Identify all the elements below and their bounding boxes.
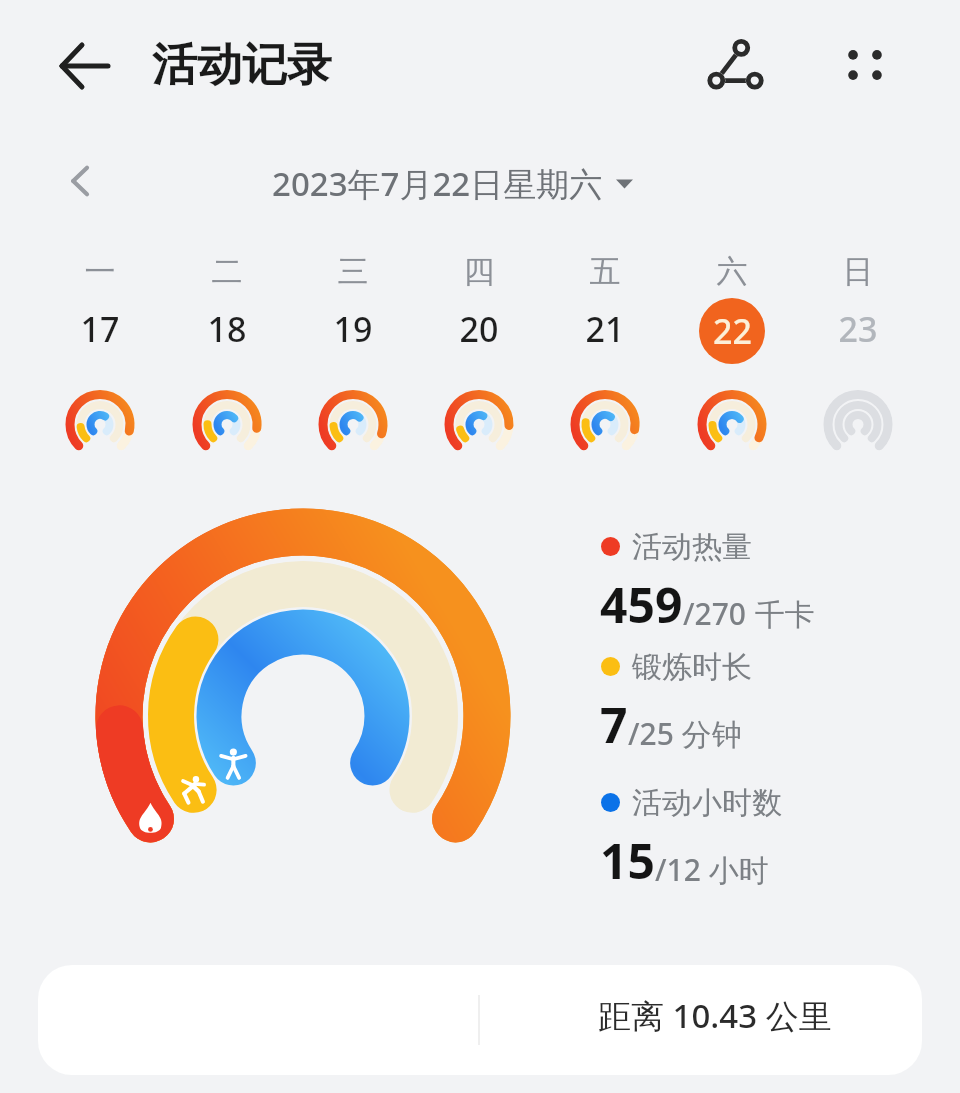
button[interactable]: 二 [167, 244, 287, 444]
staticText: 活动记录 [152, 37, 332, 94]
staticText: 小时 [701, 849, 769, 890]
button[interactable]: 日 [798, 244, 918, 444]
staticText: 五 [545, 252, 665, 291]
staticText: 2023年7月22日星期六 [272, 161, 603, 206]
staticText: 分钟 [674, 713, 742, 754]
button[interactable]: Share [696, 26, 774, 104]
staticText: 22 [713, 308, 752, 354]
button[interactable]: 2023年7月22日星期六 [272, 158, 633, 208]
staticText: /25 [628, 713, 674, 754]
staticText: /270 [683, 593, 747, 634]
staticText: 六 [672, 252, 792, 291]
staticText: 锻炼时长 [632, 648, 752, 686]
staticText: 千卡 [747, 593, 815, 634]
staticText: 三 [293, 252, 413, 291]
button[interactable]: 一 [40, 244, 160, 444]
staticText: /12 [655, 849, 701, 890]
staticText: 活动热量 [632, 528, 752, 566]
button[interactable]: 五 [545, 244, 665, 444]
staticText: 一 [40, 252, 160, 291]
button[interactable]: More options [826, 26, 904, 104]
staticText: 23 [798, 306, 918, 352]
button[interactable]: 四 [419, 244, 539, 444]
staticText: 17 [40, 306, 160, 352]
staticText: 18 [167, 306, 287, 352]
staticText: 15 [600, 828, 655, 893]
staticText: 459 [600, 572, 683, 637]
staticText: 四 [419, 252, 539, 291]
staticText: 20 [419, 306, 539, 352]
staticText: 7 [600, 692, 628, 757]
button[interactable]: 三 [293, 244, 413, 444]
staticText: 19 [293, 306, 413, 352]
staticText: 日 [798, 252, 918, 291]
staticText: 二 [167, 252, 287, 291]
staticText: 活动小时数 [632, 784, 782, 822]
button[interactable]: Previous day [48, 148, 114, 214]
staticText: 21 [545, 306, 665, 352]
button[interactable]: 六 [672, 244, 792, 444]
button[interactable]: Back [48, 29, 122, 103]
staticText: 距离 10.43 公里 [598, 993, 832, 1038]
button[interactable]: 距离 10.43 公里 [38, 965, 922, 1075]
